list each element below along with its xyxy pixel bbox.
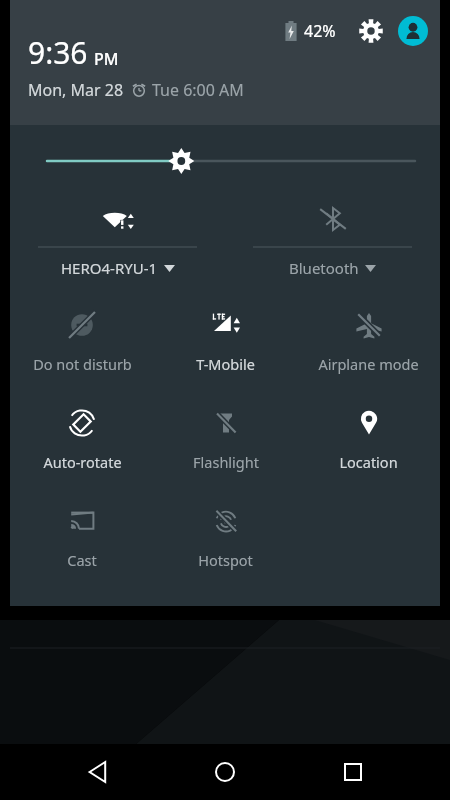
button[interactable]: Do not disturb xyxy=(10,290,154,388)
staticText: Airplane mode xyxy=(318,354,419,374)
button[interactable]: Cast xyxy=(10,486,154,584)
button[interactable]: Recents xyxy=(323,744,383,800)
staticText: Cast xyxy=(67,550,97,570)
button[interactable]: Auto-rotate xyxy=(10,388,154,486)
staticText: T-Mobile xyxy=(196,354,255,374)
button[interactable]: Home xyxy=(195,744,255,800)
staticText: HERO4-RYU-1 xyxy=(61,258,158,278)
button[interactable]: Settings xyxy=(354,14,388,48)
staticText: Do not disturb xyxy=(33,354,132,374)
staticText: Bluetooth xyxy=(289,258,359,278)
staticText: PM xyxy=(94,48,119,70)
staticText: Hotspot xyxy=(198,550,253,570)
button[interactable]: HERO4-RYU-1 xyxy=(10,199,225,278)
staticText: Auto-rotate xyxy=(43,452,122,472)
button[interactable]: Brightness xyxy=(10,141,440,181)
button[interactable]: Hotspot xyxy=(154,486,297,584)
button[interactable]: Back xyxy=(68,744,128,800)
button[interactable]: Bluetooth xyxy=(225,199,440,278)
staticText: Mon, Mar 28 xyxy=(28,79,124,101)
button[interactable]: T-Mobile xyxy=(154,290,297,388)
staticText: 9:36 xyxy=(28,32,88,73)
button[interactable]: Flashlight xyxy=(154,388,297,486)
staticText: Tue 6:00 AM xyxy=(152,79,244,101)
button[interactable]: Airplane mode xyxy=(297,290,440,388)
staticText: Flashlight xyxy=(193,452,259,472)
button[interactable]: User profile xyxy=(398,16,428,46)
button[interactable]: Location xyxy=(297,388,440,486)
staticText: 42% xyxy=(304,20,336,42)
staticText: Location xyxy=(339,452,398,472)
